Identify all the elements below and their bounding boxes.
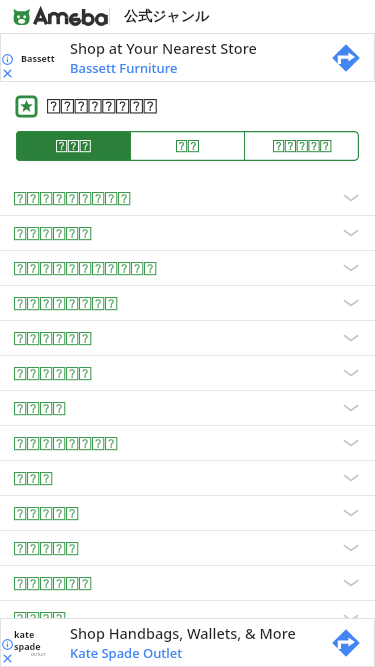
button[interactable] <box>13 7 99 27</box>
button[interactable]: Ad information <box>2 639 13 650</box>
button[interactable]: Ad information <box>0 618 375 667</box>
staticText: Shop at Your Nearest Store <box>70 38 257 58</box>
button[interactable]: Ad information <box>2 54 13 65</box>
button[interactable]: Open ad <box>331 628 361 658</box>
button[interactable] <box>0 321 375 355</box>
button[interactable] <box>131 131 244 161</box>
staticText: Shop Handbags, Wallets, & More <box>70 623 296 643</box>
button[interactable]: Close ad <box>2 68 13 79</box>
button[interactable] <box>0 531 375 565</box>
button[interactable] <box>0 356 375 390</box>
button[interactable] <box>0 496 375 530</box>
button[interactable] <box>0 601 375 635</box>
button[interactable] <box>16 131 130 161</box>
staticText: Bassett Furniture <box>70 59 178 77</box>
button[interactable] <box>0 181 375 215</box>
staticText: Bassett <box>21 52 55 64</box>
staticText: kate spade <box>14 628 62 652</box>
staticText: Kate Spade Outlet <box>70 644 183 662</box>
button[interactable]: Ad information <box>0 33 375 82</box>
button[interactable] <box>0 251 375 285</box>
staticText: OUTLET <box>31 652 46 657</box>
button[interactable]: Open ad <box>331 43 361 73</box>
staticText: 公式ジャンル <box>124 8 210 26</box>
button[interactable] <box>0 426 375 460</box>
button[interactable] <box>0 566 375 600</box>
button[interactable] <box>0 216 375 250</box>
button[interactable] <box>0 286 375 320</box>
button[interactable] <box>0 461 375 495</box>
button[interactable] <box>245 131 359 161</box>
button[interactable] <box>0 391 375 425</box>
button[interactable]: Close ad <box>2 653 13 664</box>
